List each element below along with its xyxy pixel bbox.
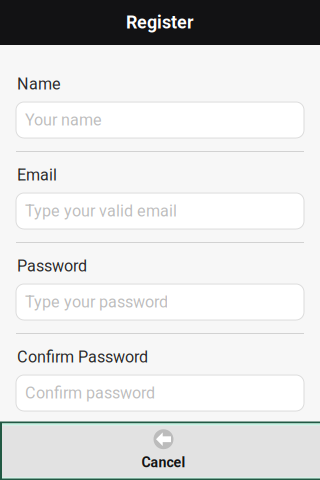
staticText: Email <box>17 165 57 184</box>
button[interactable]: Type your valid email <box>0 193 320 229</box>
staticText: Confirm Password <box>17 347 148 366</box>
staticText: Confirm password <box>25 383 155 402</box>
staticText: Password <box>17 256 87 275</box>
button[interactable]: Cancel <box>0 422 320 480</box>
staticText: Register <box>126 12 194 33</box>
button[interactable]: Confirm password <box>0 375 320 411</box>
staticText: Type your password <box>25 292 168 311</box>
staticText: Cancel <box>141 454 185 471</box>
staticText: Name <box>17 74 61 93</box>
button[interactable]: Type your password <box>0 284 320 320</box>
staticText: Your name <box>25 110 102 129</box>
staticText: Type your valid email <box>25 201 177 220</box>
button[interactable]: Your name <box>0 102 320 138</box>
